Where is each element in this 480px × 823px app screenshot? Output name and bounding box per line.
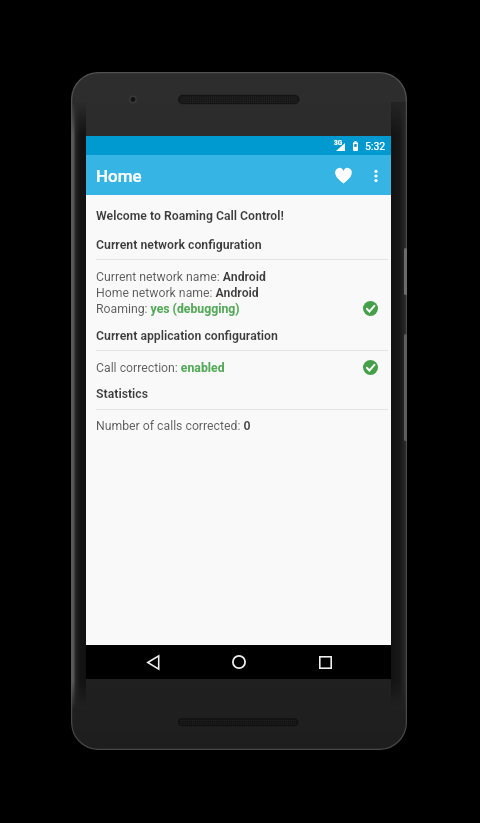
staticText: 3G (334, 139, 343, 147)
button[interactable]: Favorite (325, 157, 362, 194)
button[interactable]: Back (133, 645, 173, 679)
staticText: Statistics (96, 387, 148, 401)
staticText: Home (96, 166, 142, 186)
staticText: Roaming: yes (debugging) (96, 302, 240, 316)
staticText: Current network name: Android (96, 270, 266, 284)
button[interactable]: Home (219, 645, 259, 679)
staticText: 5:32 (365, 140, 386, 152)
staticText: Current application configuration (96, 329, 278, 343)
staticText: Number of calls corrected: 0 (96, 419, 251, 433)
staticText: Current network configuration (96, 238, 262, 252)
staticText: Welcome to Roaming Call Control! (96, 209, 284, 223)
staticText: Home network name: Android (96, 286, 259, 300)
button[interactable]: Recents (305, 645, 345, 679)
staticText: Call correction: enabled (96, 361, 225, 375)
button[interactable]: More options (360, 157, 391, 194)
